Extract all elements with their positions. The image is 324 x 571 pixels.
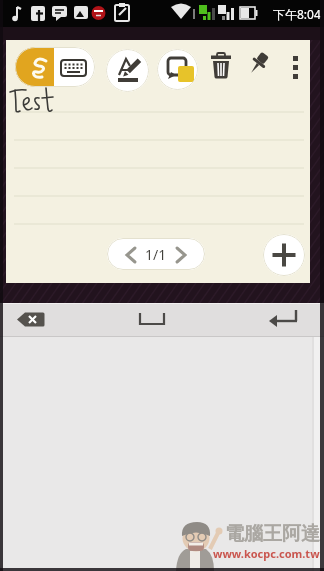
button[interactable] [157, 49, 198, 90]
staticText: 電腦王阿達 [225, 522, 320, 546]
staticText: 1/1 [145, 245, 167, 264]
staticText: 下午8:04 [273, 6, 321, 22]
button[interactable] [269, 308, 299, 330]
button[interactable] [244, 52, 272, 80]
button[interactable] [289, 54, 303, 80]
button[interactable] [138, 311, 166, 327]
button[interactable] [208, 53, 234, 79]
button[interactable]: 1/1 [107, 238, 205, 270]
button[interactable] [17, 312, 45, 327]
button[interactable] [106, 49, 149, 92]
button[interactable] [15, 47, 95, 87]
button[interactable] [263, 234, 305, 276]
staticText: www.kocpc.com.tw [213, 546, 320, 561]
